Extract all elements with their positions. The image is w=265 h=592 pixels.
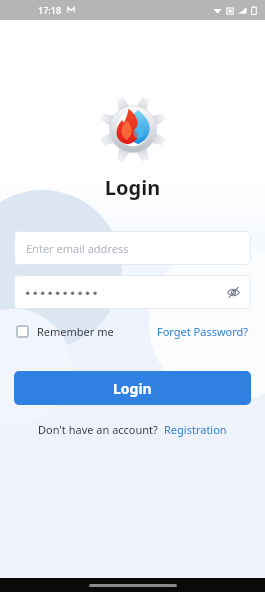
staticText: 17:18 (38, 4, 62, 16)
button[interactable]: Login (14, 371, 251, 405)
staticText: Login (0, 174, 265, 201)
button[interactable]: Registration (163, 419, 228, 440)
button[interactable]: Remember me (14, 320, 116, 343)
staticText: Forget Password? (157, 324, 249, 339)
button[interactable]: Show password (223, 282, 243, 302)
staticText: Login (113, 379, 152, 398)
staticText: Remember me (37, 324, 114, 339)
staticText: Registration (164, 422, 227, 437)
button[interactable]: Show password (14, 275, 251, 309)
staticText: Don't have an account? (38, 422, 158, 437)
button[interactable]: Forget Password? (155, 320, 251, 343)
staticText: Enter email address (26, 241, 129, 256)
button[interactable]: Enter email address (14, 231, 251, 265)
